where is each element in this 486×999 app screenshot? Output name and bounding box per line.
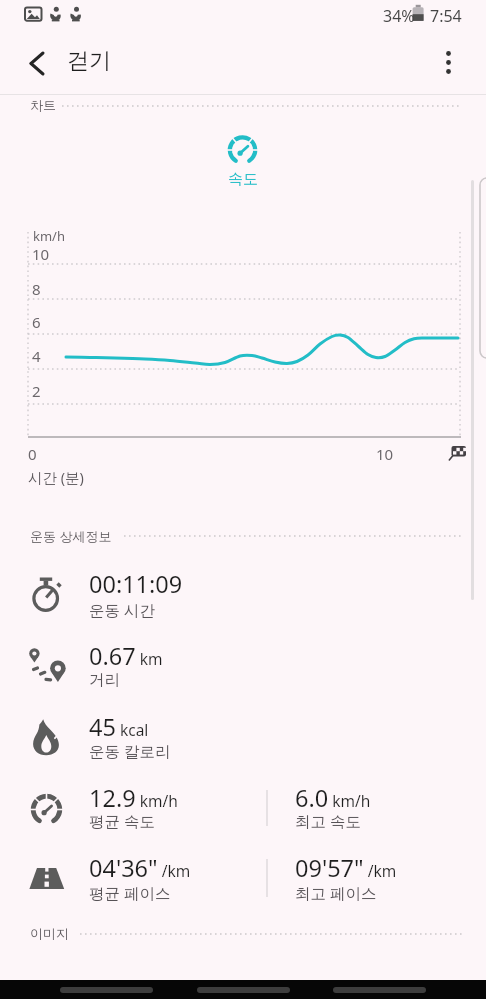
staticText: 차트 xyxy=(30,97,56,113)
staticText: 00:11:09 xyxy=(89,568,183,600)
button[interactable]: 속도 xyxy=(210,128,275,194)
staticText: 평균 속도 xyxy=(89,810,156,831)
button[interactable] xyxy=(16,42,60,86)
button[interactable] xyxy=(197,987,290,993)
staticText: 최고 속도 xyxy=(295,810,362,831)
staticText: 걷기 xyxy=(67,47,111,75)
staticText: 속도 xyxy=(228,170,258,189)
staticText: 평균 페이스 xyxy=(89,882,171,903)
staticText: km/h xyxy=(33,227,65,245)
staticText: 이미지 xyxy=(30,925,69,941)
staticText: 6 xyxy=(32,312,41,332)
staticText: 10 xyxy=(32,244,50,264)
staticText: 운동 시간 xyxy=(89,599,156,620)
button[interactable] xyxy=(333,987,426,993)
staticText: 7:54 xyxy=(430,5,462,27)
staticText: 거리 xyxy=(89,670,120,690)
button[interactable] xyxy=(60,987,153,993)
staticText: 45 kcal xyxy=(89,711,149,743)
staticText: 4 xyxy=(32,346,41,366)
staticText: 시간 (분) xyxy=(28,467,84,487)
staticText: 0.67 km xyxy=(89,640,163,672)
staticText: 34% xyxy=(383,5,415,27)
staticText: 12.9 km/h xyxy=(89,782,178,814)
staticText: 10 xyxy=(376,444,394,464)
button[interactable] xyxy=(430,42,470,86)
staticText: 04'36" /km xyxy=(89,852,191,884)
staticText: 6.0 km/h xyxy=(295,782,371,814)
staticText: 운동 상세정보 xyxy=(30,527,112,545)
staticText: 2 xyxy=(32,381,41,401)
staticText: 운동 칼로리 xyxy=(89,740,171,761)
staticText: 09'57" /km xyxy=(295,852,397,884)
staticText: 8 xyxy=(32,279,41,299)
staticText: 최고 페이스 xyxy=(295,882,377,903)
staticText: 0 xyxy=(28,444,37,464)
